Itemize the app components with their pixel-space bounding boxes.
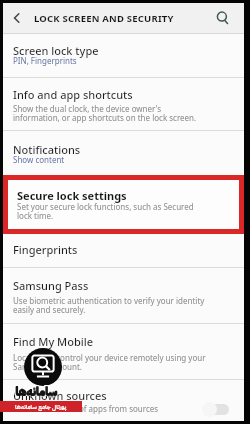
staticText: Unknown sources: [13, 388, 107, 403]
staticText: Fingerprints: [13, 242, 78, 257]
staticText: Show content: [13, 154, 65, 165]
staticText: Notifications: [13, 142, 81, 157]
staticText: Info and app shortcuts: [13, 87, 133, 102]
button[interactable]: Screen lock type: [3, 43, 244, 77]
staticText: پورتال جامع سامانه‌ها: [15, 402, 67, 411]
button[interactable]: Notifications: [3, 142, 244, 175]
staticText: Screen lock type: [13, 43, 99, 58]
button[interactable]: Samsung Pass: [3, 278, 244, 322]
staticText: Show the dual clock, the device owner's …: [13, 103, 197, 124]
staticText: سامانه‌ها: [15, 384, 57, 401]
staticText: سامانه‌ها: [16, 384, 58, 401]
staticText: سامانه‌ها: [15, 383, 57, 400]
staticText: سامانه‌ها: [16, 383, 58, 400]
staticText: Use biometric authentication to verify y…: [13, 295, 205, 316]
button[interactable]: Unknown sources: [3, 388, 244, 421]
staticText: سامانه‌ها: [14, 383, 56, 400]
button[interactable]: Fingerprints: [3, 242, 244, 266]
staticText: سامانه‌ها: [15, 384, 57, 401]
staticText: Allow installation of apps from sources: [13, 403, 159, 414]
staticText: سامانه‌ها: [15, 382, 57, 399]
staticText: سامانه‌ها: [16, 382, 58, 399]
staticText: Samsung Pass: [13, 278, 89, 293]
staticText: سامانه‌ها: [14, 384, 56, 401]
staticText: LOCK SCREEN AND SECURITY: [34, 12, 174, 25]
button[interactable]: Info and app shortcuts: [3, 87, 244, 130]
staticText: Find My Mobile: [13, 334, 94, 349]
button[interactable]: [216, 11, 230, 25]
button[interactable]: [11, 12, 23, 24]
staticText: سامانه‌ها: [14, 382, 56, 399]
staticText: Locate and control your device remotely …: [13, 352, 206, 373]
staticText: PIN, Fingerprints: [13, 55, 77, 66]
staticText: سامانه‌ها: [16, 383, 58, 400]
staticText: سامانه‌ها: [16, 384, 58, 401]
staticText: Secure lock settings: [17, 188, 127, 203]
staticText: Set your secure lock functions, such as …: [17, 201, 194, 222]
button[interactable]: Find My Mobile: [3, 334, 244, 381]
button[interactable]: Secure lock settings: [8, 180, 239, 229]
